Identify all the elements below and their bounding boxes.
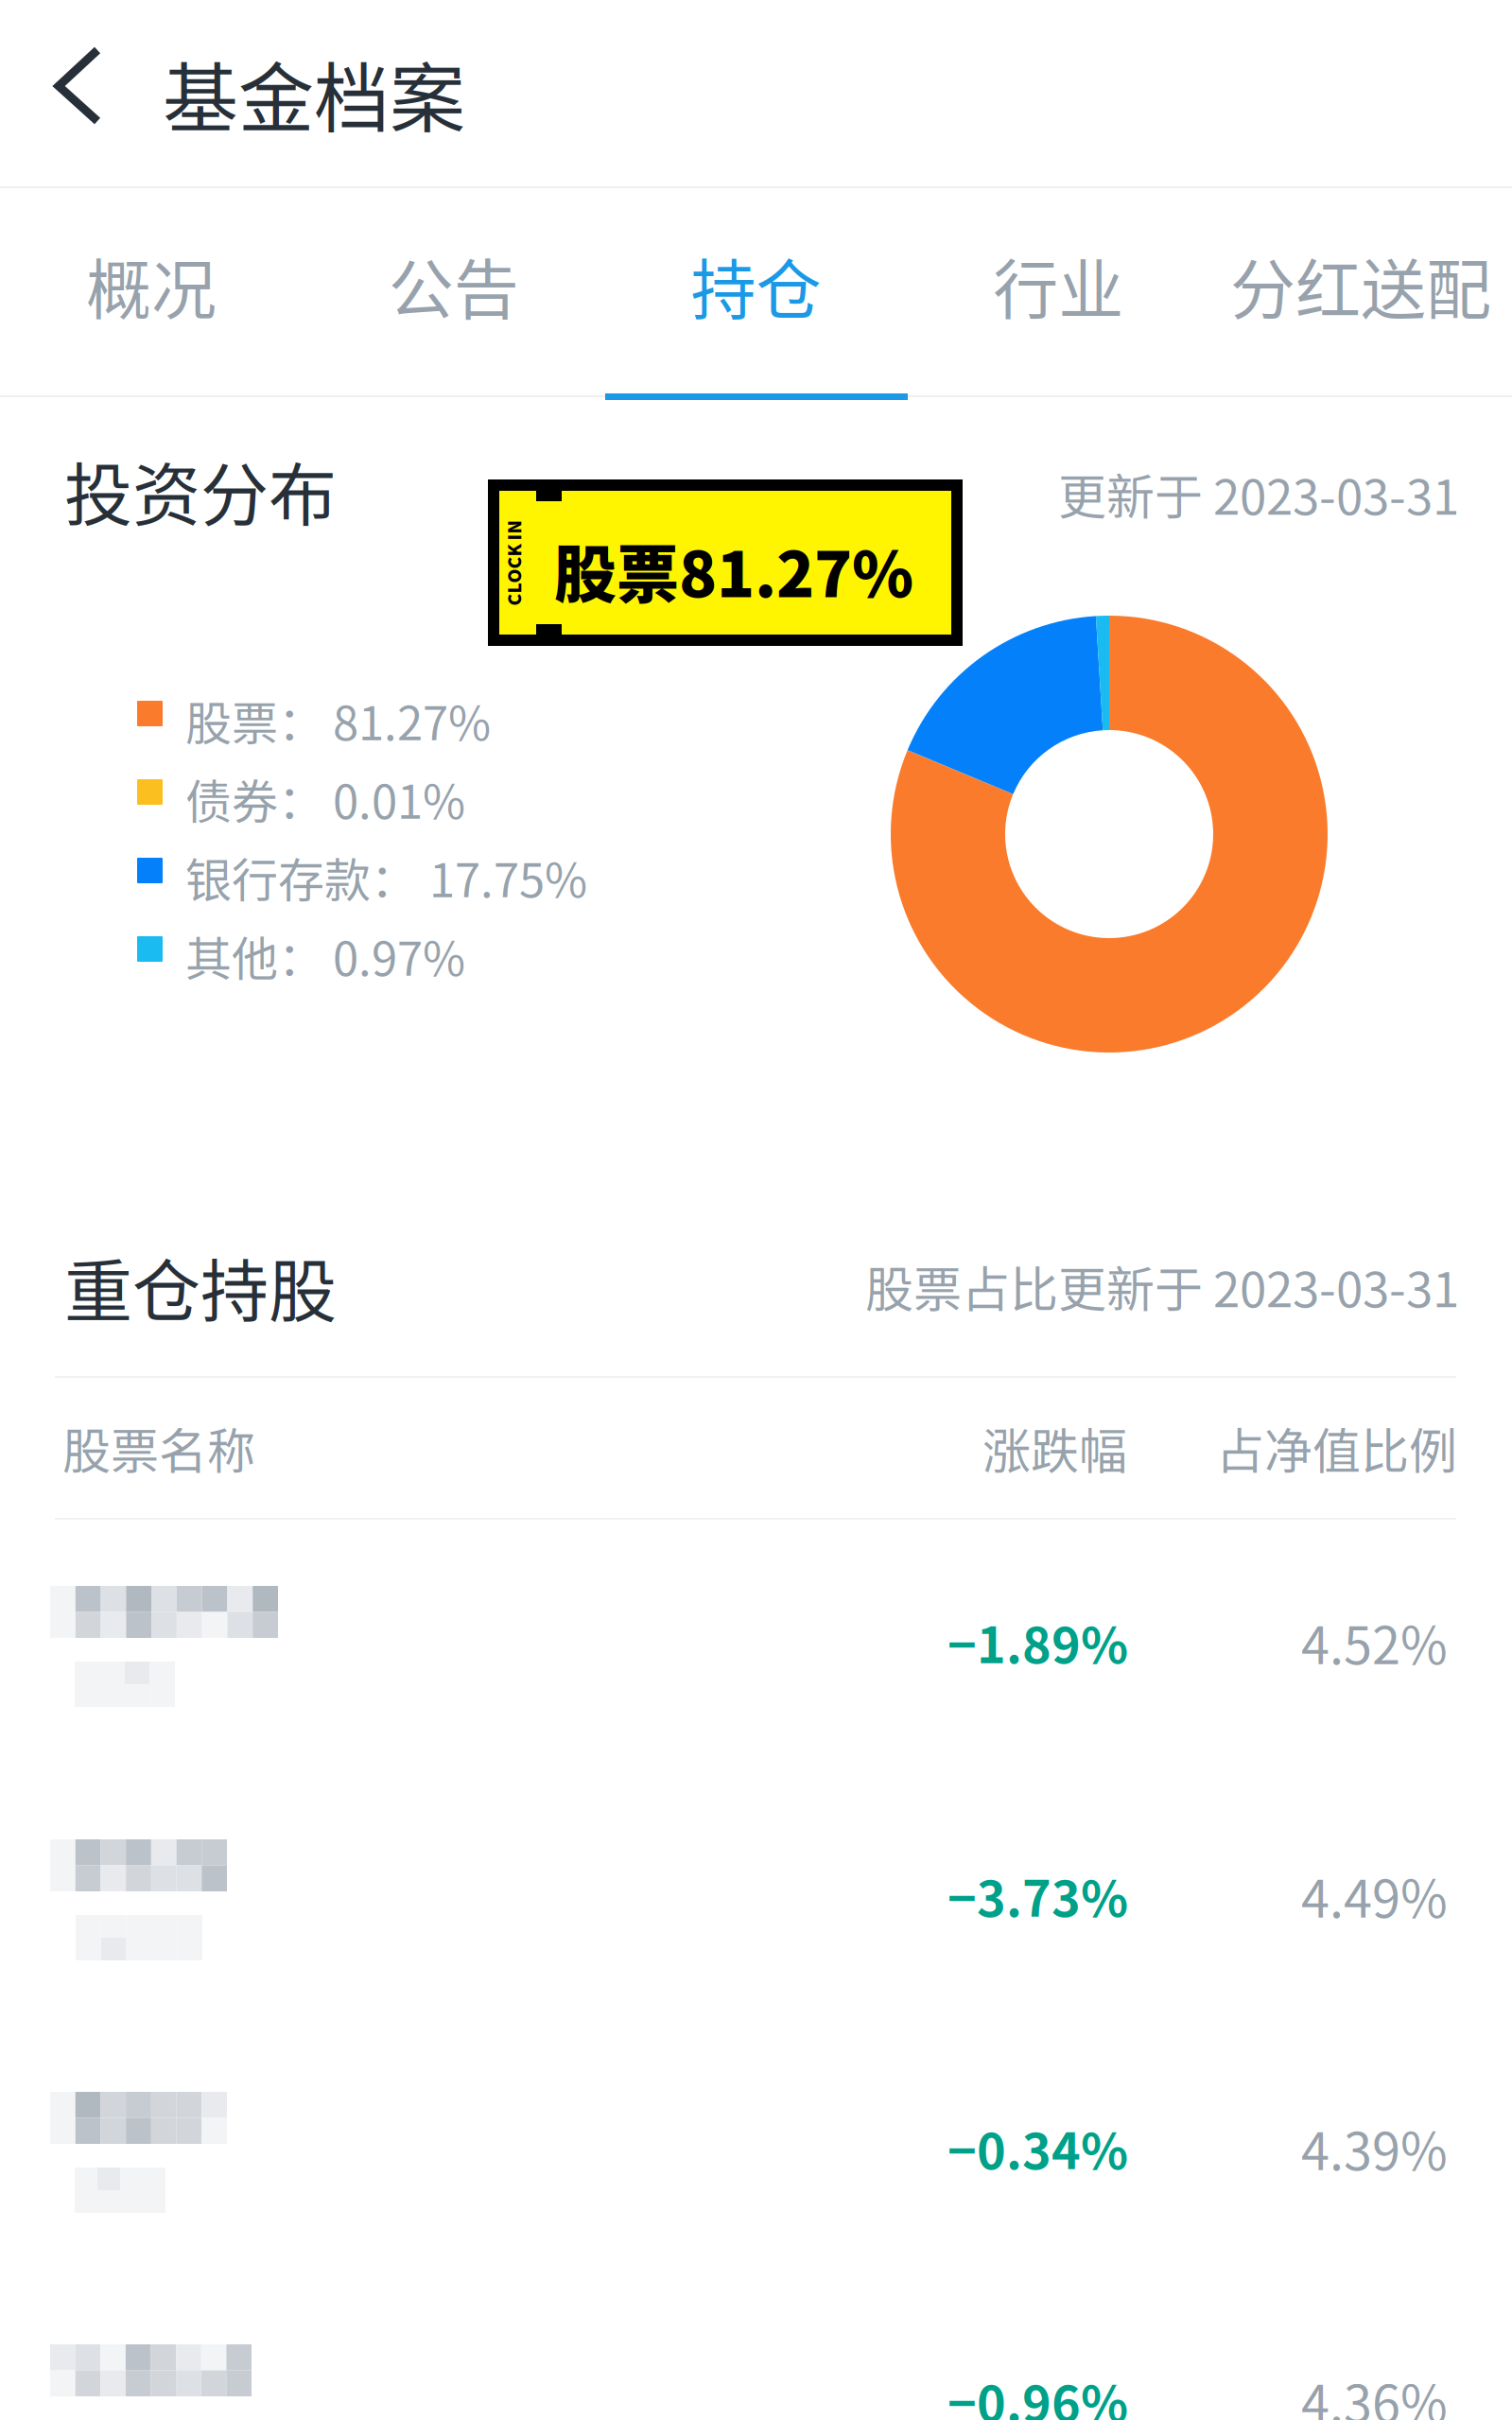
staticText: CLOCK IN: [470, 550, 556, 576]
staticText: 股票占比更新于 2023-03-31: [865, 1251, 1459, 1321]
staticText: 81.27%: [333, 687, 491, 754]
staticText: 分红送配: [1230, 238, 1491, 333]
staticText: −0.34%: [947, 2112, 1128, 2183]
staticText: −0.96%: [947, 2365, 1128, 2420]
staticText: 公告: [388, 238, 519, 333]
button[interactable]: −0.96%: [0, 2303, 1512, 2420]
staticText: 0.97%: [333, 922, 465, 989]
staticText: 17.75%: [429, 844, 587, 911]
staticText: 投资分布: [64, 441, 337, 539]
staticText: 基金档案: [163, 38, 465, 147]
staticText: 持仓: [691, 238, 821, 333]
staticText: 行业: [993, 238, 1124, 333]
staticText: 0.01%: [333, 765, 465, 832]
button[interactable]: 概况: [0, 188, 302, 396]
staticText: 涨跌幅: [982, 1413, 1127, 1483]
button[interactable]: −1.89%: [0, 1544, 1512, 1797]
staticText: 债券：: [185, 765, 324, 832]
staticText: 4.52%: [1301, 1605, 1448, 1679]
staticText: 4.39%: [1301, 2111, 1448, 2185]
button[interactable]: 行业: [907, 188, 1210, 396]
staticText: 概况: [86, 238, 216, 333]
staticText: 其他：: [185, 922, 324, 989]
button[interactable]: 分红送配: [1210, 188, 1512, 396]
staticText: 股票81.27%: [554, 525, 913, 615]
staticText: 银行存款：: [185, 844, 417, 911]
staticText: 4.49%: [1301, 1858, 1448, 1932]
button[interactable]: 持仓: [605, 188, 907, 396]
staticText: 股票：: [185, 687, 324, 754]
button[interactable]: 公告: [302, 188, 605, 396]
button[interactable]: −3.73%: [0, 1798, 1512, 2050]
staticText: 更新于 2023-03-31: [1058, 459, 1459, 528]
staticText: −1.89%: [947, 1606, 1128, 1677]
staticText: 占净值比例: [1216, 1413, 1457, 1483]
staticText: 重仓持股: [64, 1237, 337, 1336]
staticText: 4.36%: [1301, 2363, 1448, 2420]
button[interactable]: −0.34%: [0, 2050, 1512, 2303]
button[interactable]: Back: [0, 0, 151, 180]
staticText: −3.73%: [947, 1860, 1128, 1931]
staticText: 股票名称: [62, 1413, 255, 1483]
